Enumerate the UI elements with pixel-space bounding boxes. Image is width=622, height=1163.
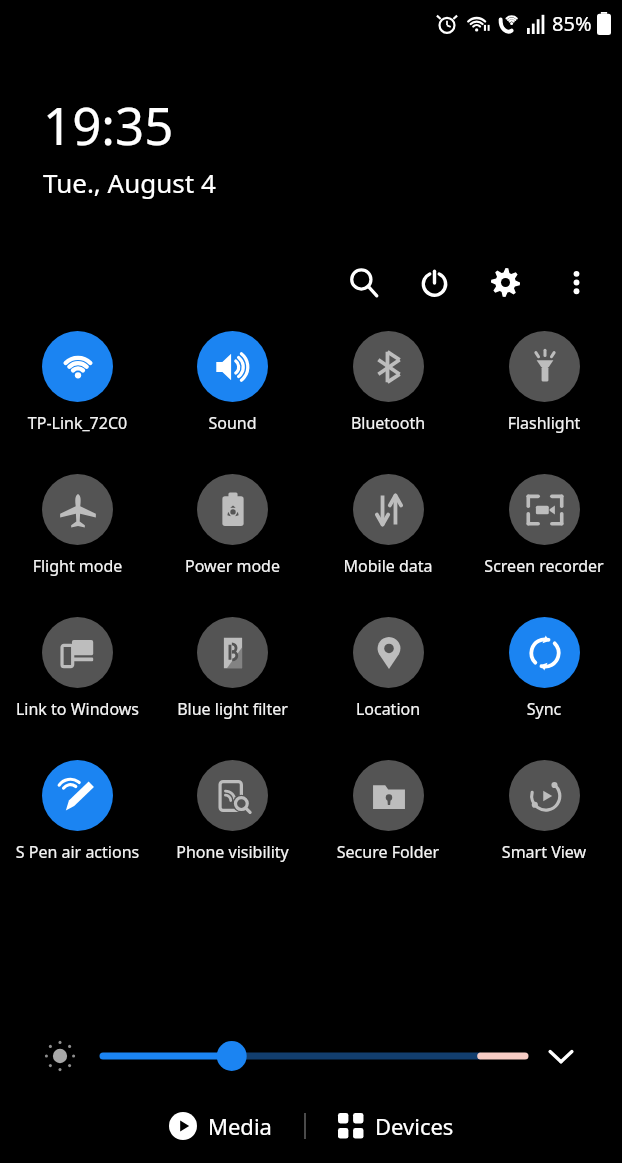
staticText: Tue., August 4 [43,165,216,200]
staticText: Phone visibility [157,841,308,863]
button[interactable]: Power [410,258,458,306]
button[interactable]: Media [157,1103,284,1149]
button[interactable]: Secure Folder [310,760,466,884]
button[interactable]: Location [310,617,466,741]
button[interactable]: Power mode [155,474,310,598]
button[interactable]: Phone visibility [155,760,310,884]
staticText: TP-Link_72C0 [2,412,153,434]
button[interactable]: Sound [155,331,310,455]
button[interactable]: TP-Link_72C0 [0,331,155,455]
staticText: Link to Windows [2,698,153,720]
staticText: Secure Folder [312,841,464,863]
staticText: S Pen air actions [2,841,153,863]
staticText: 19:35 [43,90,174,159]
staticText: Power mode [157,555,308,577]
staticText: Mobile data [312,555,464,577]
button[interactable]: Settings [481,258,529,306]
button[interactable]: Flight mode [0,474,155,598]
staticText: Blue light filter [157,698,308,720]
button[interactable]: S Pen air actions [0,760,155,884]
staticText: Media [208,1111,272,1141]
button[interactable]: Link to Windows [0,617,155,741]
button[interactable]: Screen recorder [466,474,622,598]
button[interactable]: Sync [466,617,622,741]
button[interactable]: Expand brightness settings [538,1033,584,1079]
button[interactable]: Search [339,258,387,306]
button[interactable]: Mobile data [310,474,466,598]
staticText: Bluetooth [312,412,464,434]
staticText: 85% [552,10,592,37]
staticText: Flight mode [2,555,153,577]
button[interactable]: Devices [326,1103,466,1149]
staticText: Flashlight [468,412,620,434]
button[interactable]: Bluetooth [310,331,466,455]
staticText: Sync [468,698,620,720]
staticText: Sound [157,412,308,434]
staticText: Devices [375,1111,454,1141]
button[interactable]: Smart View [466,760,622,884]
button[interactable]: Brightness slider [98,1032,530,1080]
staticText: Smart View [468,841,620,863]
button[interactable]: Blue light filter [155,617,310,741]
button[interactable]: Flashlight [466,331,622,455]
staticText: Location [312,698,464,720]
button[interactable]: Brightness [36,1032,84,1080]
staticText: Screen recorder [468,555,620,577]
button[interactable]: More options [552,258,600,306]
